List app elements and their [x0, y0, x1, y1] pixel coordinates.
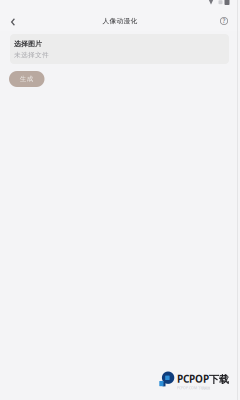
button[interactable]: 选择图片	[10, 34, 229, 64]
staticText: 选择图片	[14, 40, 42, 48]
staticText: 未选择文件	[14, 51, 49, 59]
staticText: ?	[222, 17, 225, 25]
button[interactable]: Back	[0, 12, 26, 32]
staticText: 人像动漫化	[102, 17, 137, 25]
staticText: 生成	[20, 75, 34, 83]
staticText: PCPOP下载	[177, 372, 229, 386]
button[interactable]: Help	[211, 11, 237, 31]
button[interactable]: 生成	[9, 71, 44, 87]
staticText: PCPOP.COM 下载频道	[177, 386, 210, 390]
